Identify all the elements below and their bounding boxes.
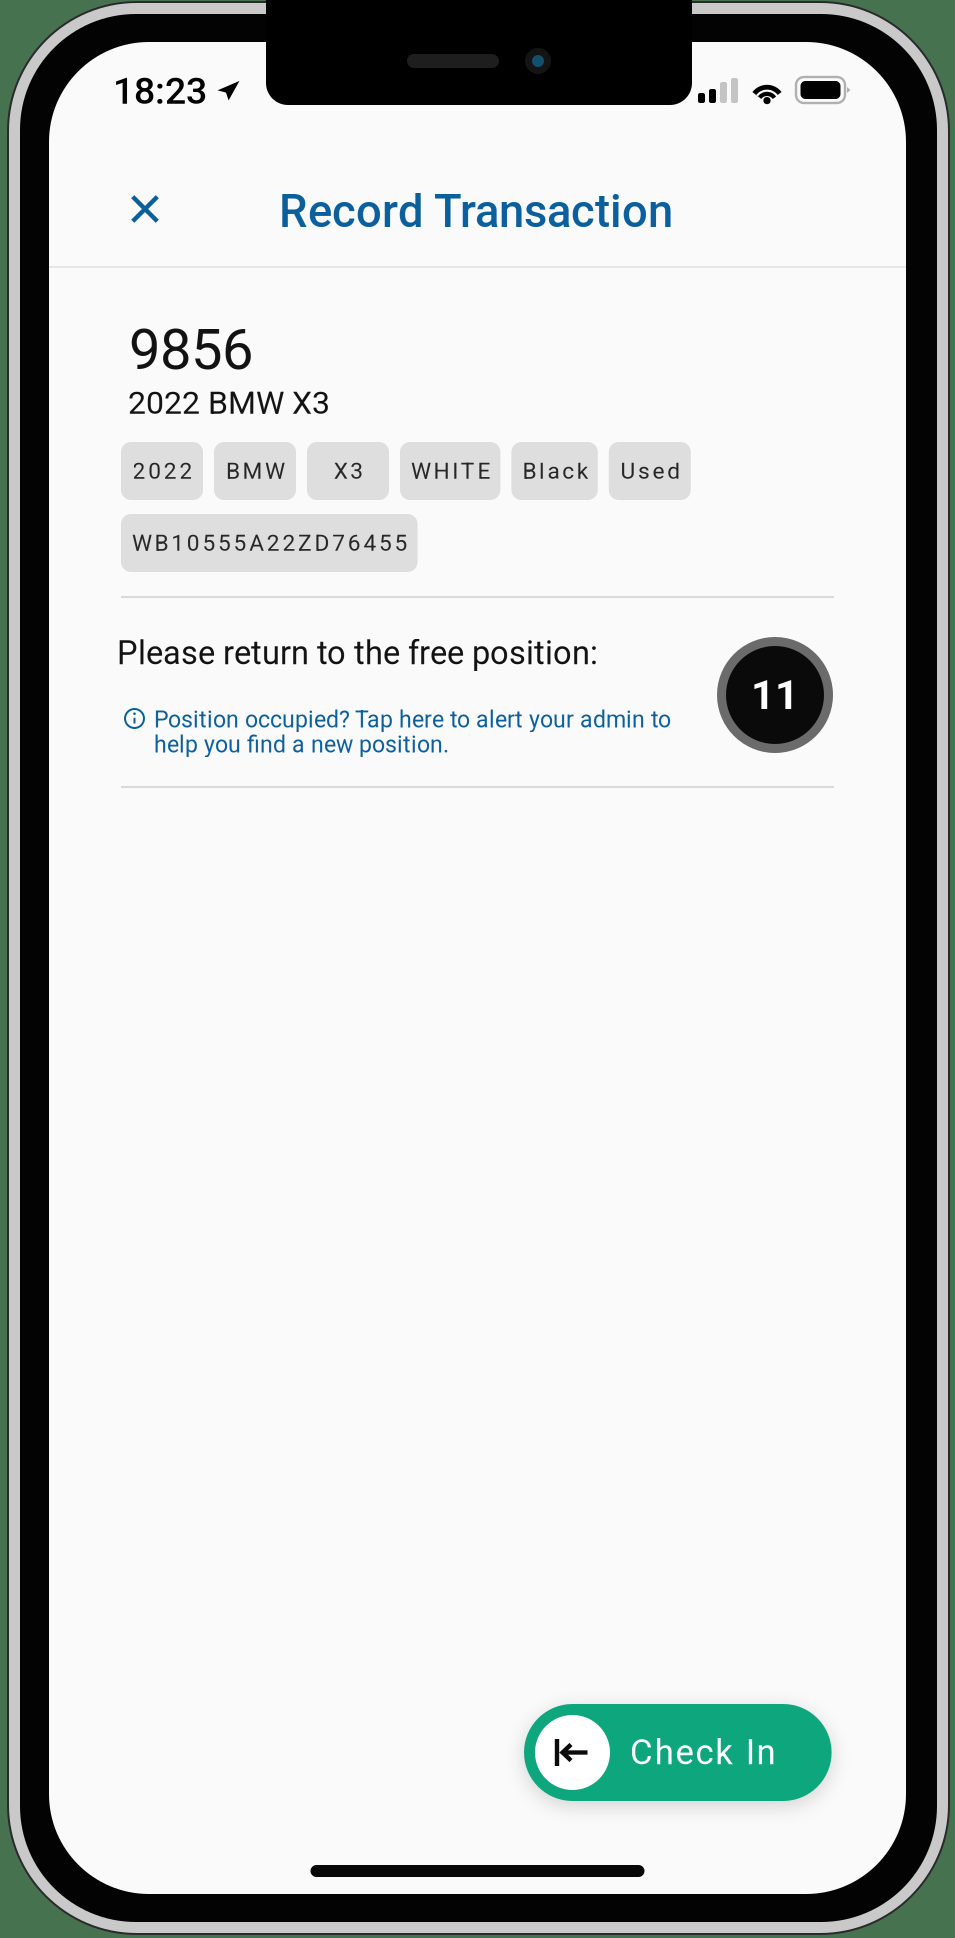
staticText: 9856	[129, 317, 253, 383]
staticText: 11	[751, 671, 799, 719]
staticText: BMW	[226, 458, 285, 484]
staticText: 2022	[133, 458, 192, 484]
staticText: Used	[620, 458, 680, 484]
staticText: Record Transaction	[279, 185, 673, 238]
staticText: Please return to the free position:	[117, 634, 598, 672]
staticText: Black	[522, 458, 588, 484]
button[interactable]: Close	[101, 165, 189, 253]
button[interactable]: Check In	[524, 1704, 832, 1801]
staticText: Check In	[630, 1732, 776, 1773]
staticText: 18:23	[113, 69, 207, 113]
staticText: WB10555A22ZD76455	[132, 530, 408, 556]
staticText: WHITE	[411, 458, 490, 484]
staticText: Position occupied? Tap here to alert you…	[154, 706, 671, 733]
staticText: help you find a new position.	[154, 731, 449, 758]
staticText: X3	[334, 458, 363, 484]
staticText: 2022 BMW X3	[128, 384, 330, 421]
